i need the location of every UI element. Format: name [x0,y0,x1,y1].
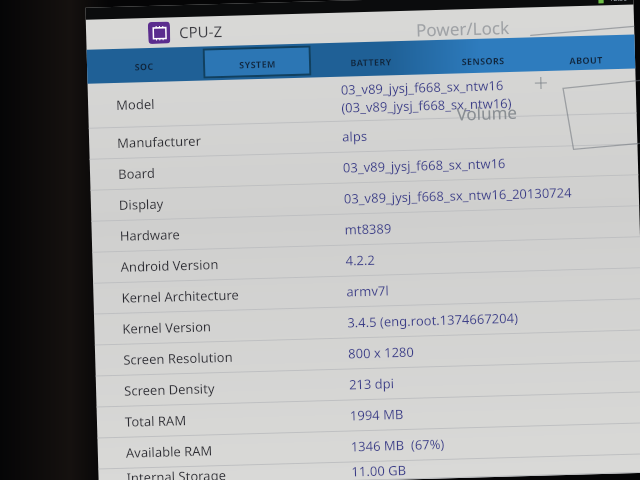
button[interactable]: Internal Storage [98,454,640,480]
staticText: SYSTEM [239,57,276,70]
staticText: BATTERY [350,55,392,68]
staticText: 4.2.2 [345,251,376,269]
button[interactable]: ABOUT [539,36,632,69]
staticText: 1346 MB (67%) [350,435,445,455]
button[interactable]: Total RAM [97,392,640,438]
staticText: ABOUT [569,53,603,66]
staticText: Manufacturer [117,128,342,152]
staticText: 800 x 1280 [348,343,414,362]
button[interactable]: Screen Resolution [95,330,640,376]
staticText: Board [118,159,343,183]
staticText: Display [119,190,344,214]
button[interactable]: BATTERY [316,42,425,75]
button[interactable]: SOC [90,49,197,82]
staticText: 03_v89_jysj_f668_sx_ntw16 [343,154,506,177]
staticText: alps [342,127,367,146]
button[interactable]: SYSTEM [203,45,311,78]
staticText: (03_v89_jysj_f668_sx_ntw16) [341,94,512,117]
staticText: Kernel Architecture [121,283,347,307]
staticText: CPU-Z [179,21,222,42]
button[interactable]: Board [90,144,638,190]
button[interactable]: Hardware [91,206,640,252]
staticText: 11.00 GB [351,461,407,480]
staticText: Model [116,90,341,114]
staticText: SENSORS [461,54,505,67]
staticText: 12:30 [609,0,627,4]
staticText: Internal Storage [126,462,352,480]
button[interactable]: Display [90,175,639,221]
button[interactable]: Kernel Version [94,299,640,345]
button[interactable]: Screen Density [96,361,640,407]
staticText: 1994 MB [350,405,404,424]
staticText: 03_v89_jysj_f668_sx_ntw16 [340,76,504,99]
staticText: SOC [134,60,154,72]
staticText: armv7l [346,281,390,301]
button[interactable]: SENSORS [430,39,534,72]
staticText: Android Version [120,252,346,276]
button[interactable]: Available RAM [97,423,640,469]
staticText: 03_v89_jysj_f668_sx_ntw16_20130724 [344,183,572,208]
staticText: mt8389 [344,219,392,239]
staticText: 3.4.5 (eng.root.1374667204) [347,309,518,332]
button[interactable]: Manufacturer [89,113,637,159]
staticText: Total RAM [125,406,350,431]
staticText: Power/Lock [416,16,509,41]
button[interactable]: Kernel Architecture [93,268,640,314]
button[interactable]: Model [87,68,636,128]
staticText: Volume [456,101,518,125]
button[interactable]: Android Version [92,237,640,283]
staticText: Screen Resolution [123,344,348,369]
staticText: Available RAM [126,437,351,462]
staticText: Hardware [119,221,345,245]
staticText: Kernel Version [122,314,347,338]
staticText: 213 dpi [349,374,395,393]
staticText: Screen Density [124,375,349,400]
